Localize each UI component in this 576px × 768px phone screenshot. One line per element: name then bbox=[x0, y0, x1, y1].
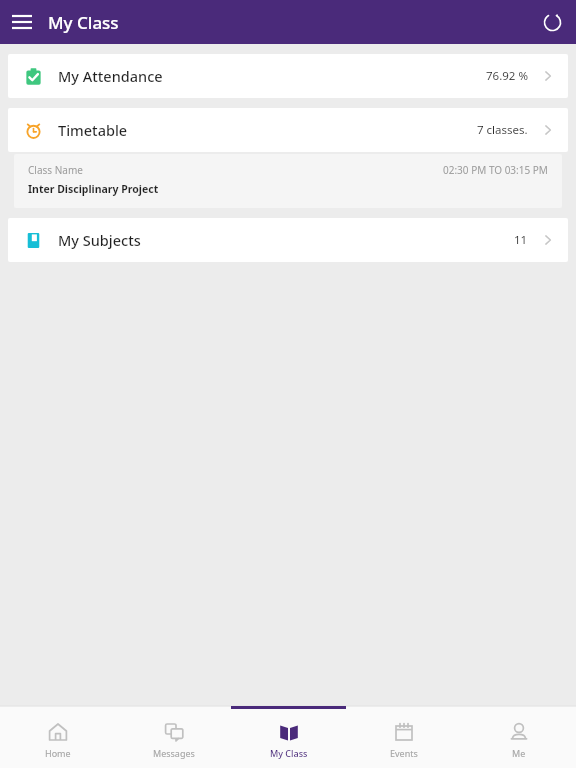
button[interactable]: Me bbox=[461, 706, 576, 768]
staticText: Class Name bbox=[28, 163, 83, 177]
button[interactable]: Messages bbox=[116, 706, 231, 768]
button[interactable]: Open navigation menu bbox=[4, 4, 40, 40]
staticText: Home bbox=[45, 747, 71, 759]
staticText: Inter Disciplinary Project bbox=[28, 182, 159, 196]
staticText: My Class bbox=[270, 747, 308, 759]
button[interactable]: Timetable bbox=[8, 108, 568, 152]
staticText: 76.92 % bbox=[486, 68, 528, 84]
button[interactable]: Events bbox=[346, 706, 461, 768]
staticText: Timetable bbox=[58, 120, 128, 140]
button[interactable]: My Attendance bbox=[8, 54, 568, 98]
staticText: My Class bbox=[48, 11, 119, 34]
button[interactable]: My Class bbox=[231, 706, 346, 768]
staticText: 11 bbox=[514, 232, 528, 248]
button[interactable]: Class Name bbox=[14, 154, 562, 208]
button[interactable]: Refresh bbox=[534, 4, 570, 40]
staticText: 02:30 PM TO 03:15 PM bbox=[443, 163, 548, 177]
staticText: Me bbox=[512, 747, 526, 759]
staticText: My Subjects bbox=[58, 230, 141, 250]
button[interactable]: Home bbox=[0, 706, 116, 768]
staticText: Messages bbox=[153, 747, 195, 759]
staticText: 7 classes. bbox=[477, 122, 528, 138]
staticText: My Attendance bbox=[58, 66, 163, 86]
staticText: Events bbox=[390, 747, 418, 759]
button[interactable]: My Subjects bbox=[8, 218, 568, 262]
